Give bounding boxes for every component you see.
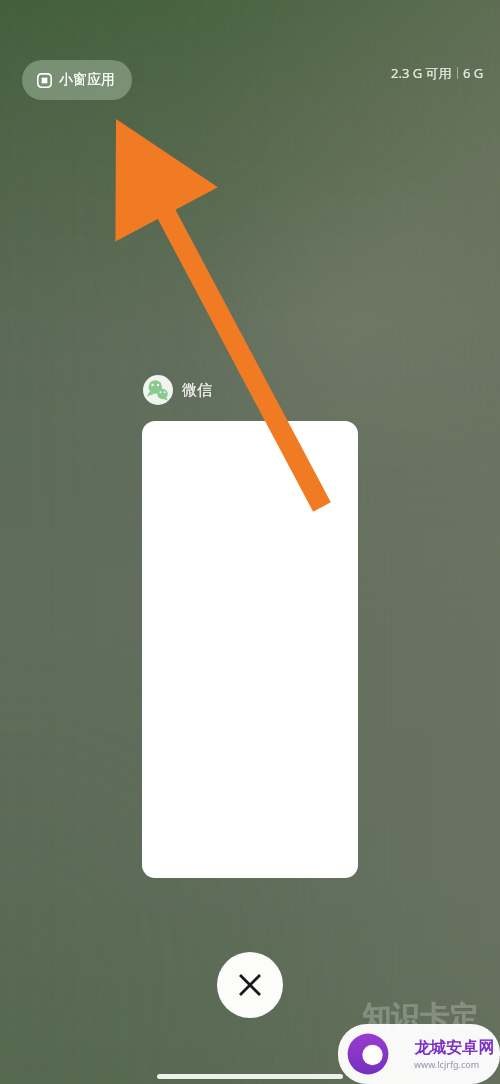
button[interactable]: Close: [217, 952, 283, 1018]
staticText: 2.3 G 可用: [391, 64, 452, 82]
staticText: 微信: [182, 381, 212, 400]
staticText: 小窗应用: [59, 71, 115, 89]
button[interactable]: 微信: [143, 375, 212, 405]
button[interactable]: [142, 421, 358, 878]
staticText: 知识卡定: [362, 999, 478, 1036]
staticText: 龙城安卓网: [414, 1038, 494, 1058]
button[interactable]: 小窗应用: [22, 60, 132, 100]
staticText: www.lcjrfg.com: [414, 1058, 480, 1070]
staticText: 6 G: [463, 64, 484, 82]
